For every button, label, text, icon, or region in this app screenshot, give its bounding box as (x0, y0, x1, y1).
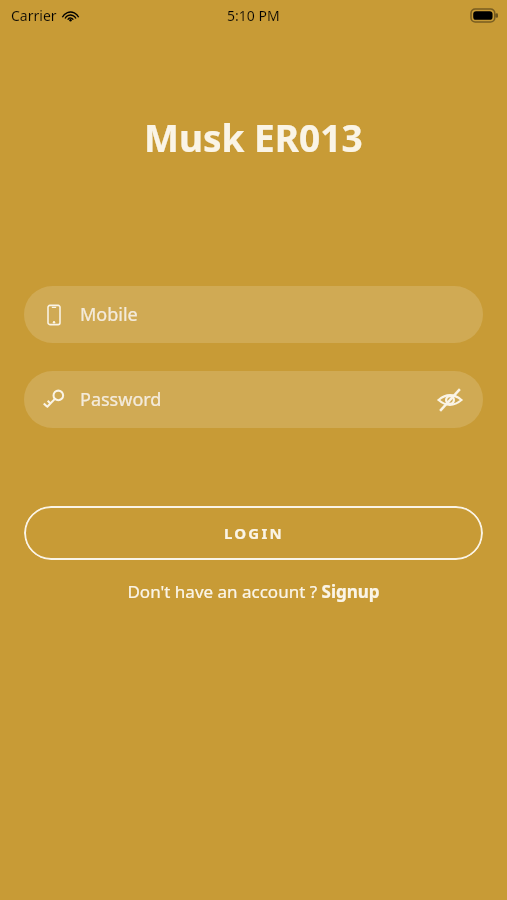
button[interactable]: Toggle password visibility (435, 385, 465, 415)
staticText: Password (80, 387, 162, 412)
staticText: Don't have an account ? Signup (127, 580, 380, 603)
button[interactable]: Mobile (24, 286, 483, 343)
staticText: Mobile (80, 302, 138, 327)
button[interactable]: Don't have an account ? Signup (127, 580, 380, 603)
staticText: LOGIN (224, 523, 284, 543)
staticText: 5:10 PM (227, 6, 280, 25)
button[interactable]: Password (24, 371, 483, 428)
staticText: Carrier (11, 6, 57, 25)
button[interactable]: LOGIN (24, 506, 483, 560)
staticText: Musk ER013 (144, 112, 363, 162)
